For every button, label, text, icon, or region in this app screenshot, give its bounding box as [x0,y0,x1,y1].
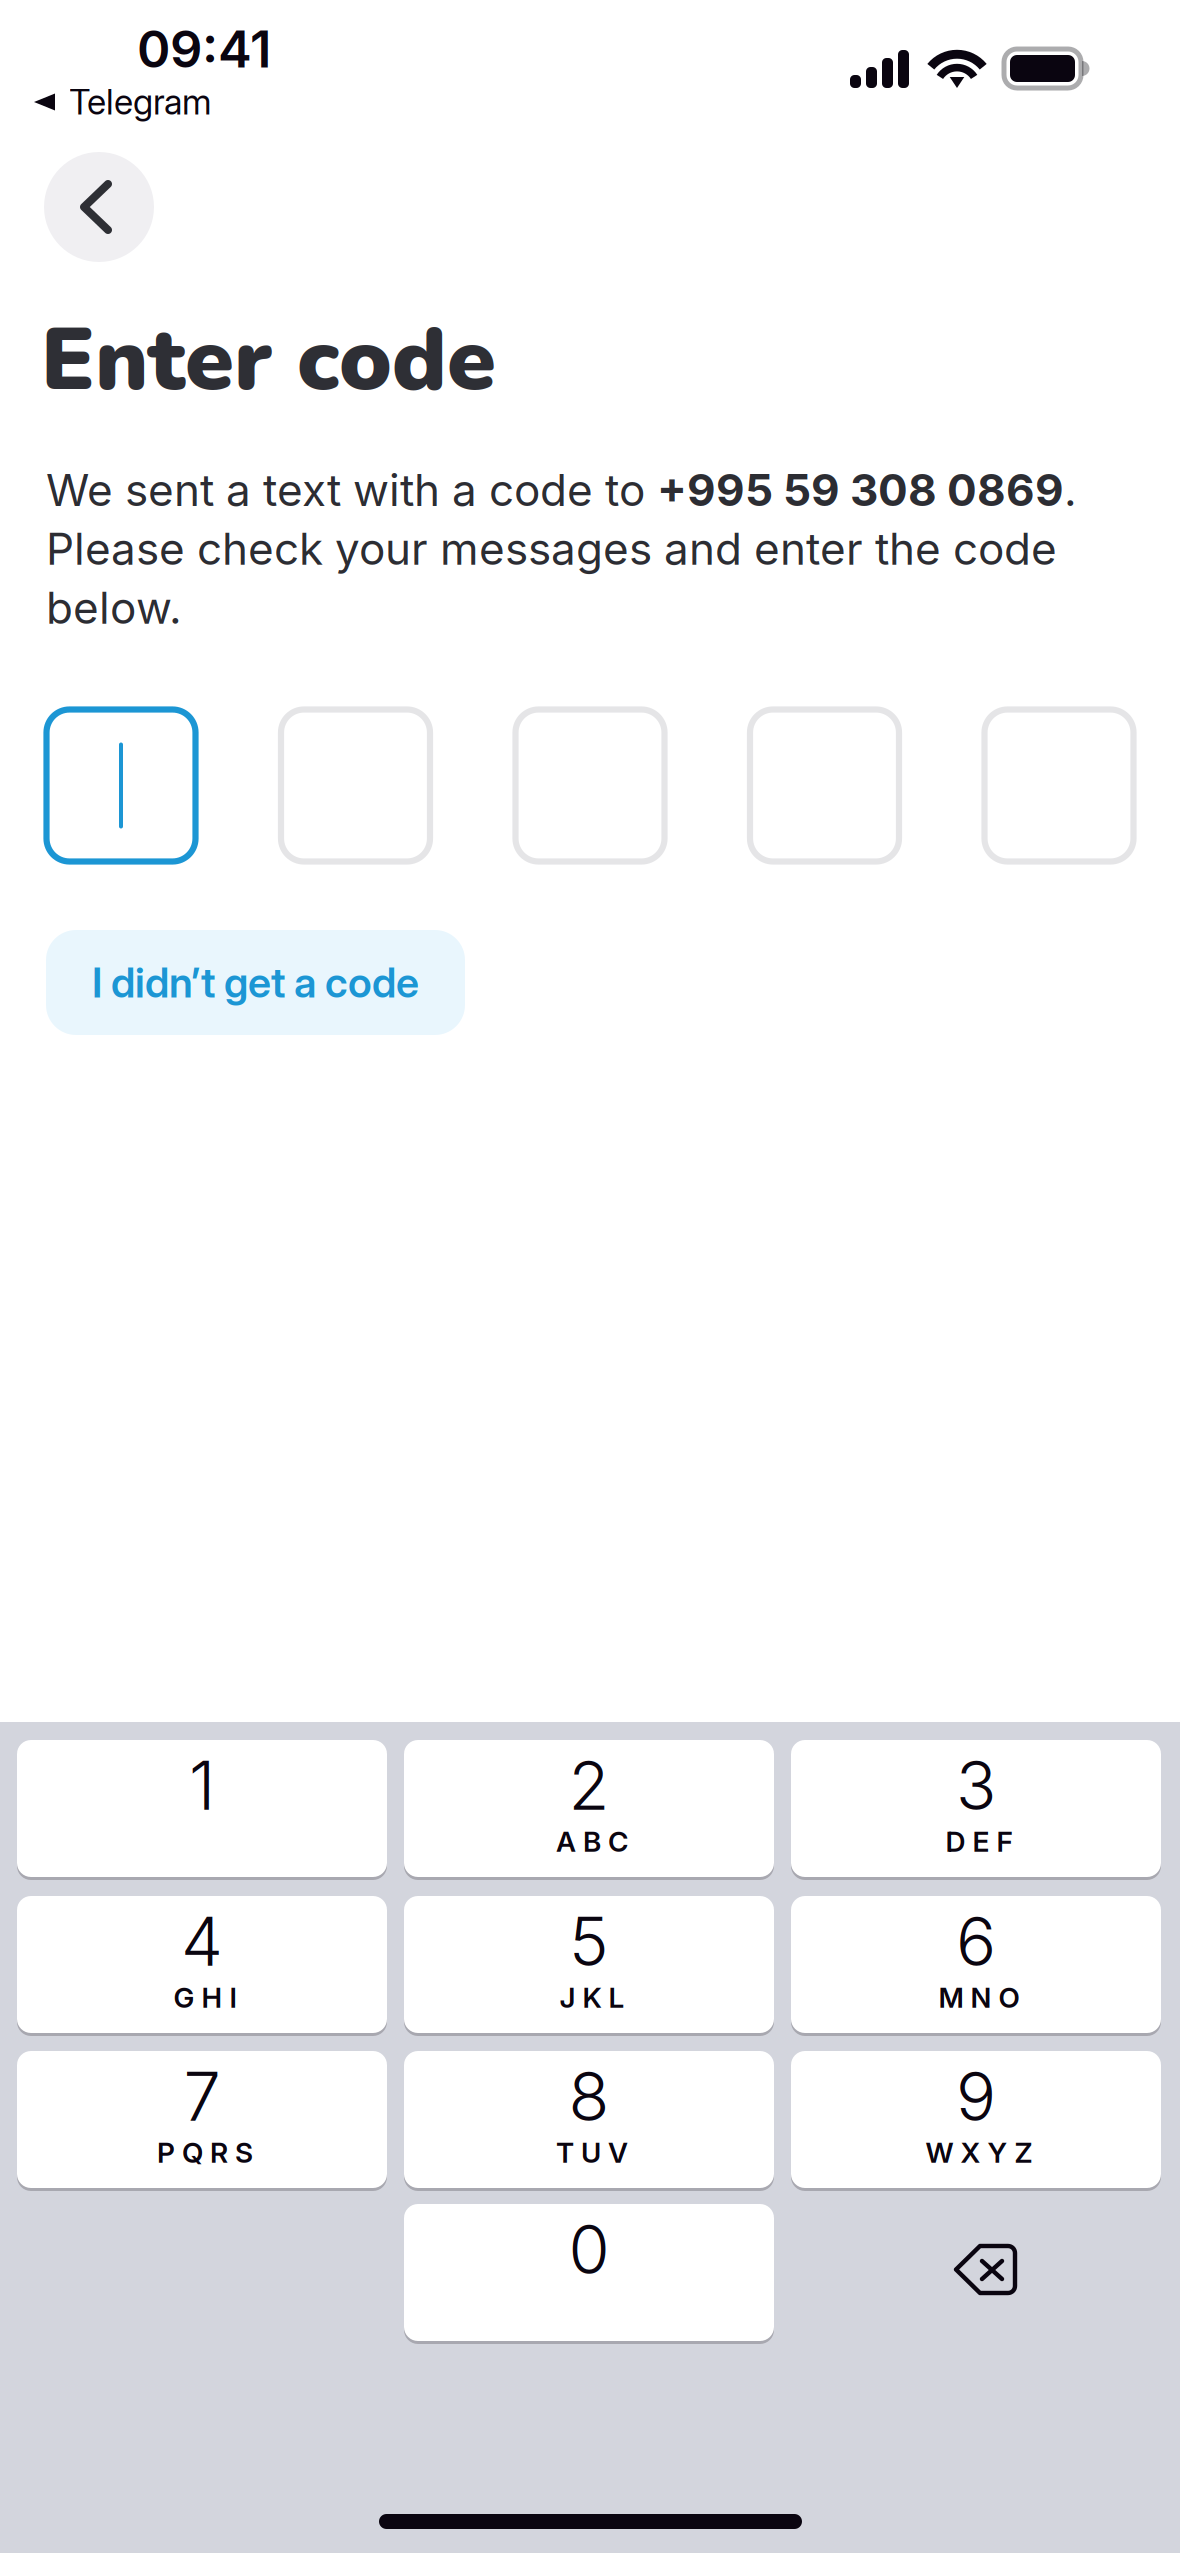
staticText: M N O [938,1981,1019,2014]
button[interactable]: 9 [791,2049,1161,2190]
button[interactable]: 1 [17,1738,387,1879]
staticText: I didn’t get a code [92,957,419,1007]
staticText: A B C [556,1825,628,1858]
button[interactable]: 8 [404,2049,774,2190]
button[interactable]: 3 [791,1738,1161,1879]
staticText: W X Y Z [925,2136,1032,2169]
button[interactable]: Delete [791,2202,1161,2343]
staticText: 9 [956,2056,996,2137]
button[interactable]: Verification code [46,709,1133,861]
staticText: J K L [559,1981,624,2014]
button[interactable]: Back [44,152,154,262]
staticText: 09:41 [137,18,271,80]
staticText: 3 [956,1745,996,1826]
staticText: Telegram [69,81,212,123]
staticText: 8 [568,2056,609,2137]
staticText: Enter code [41,300,496,420]
button[interactable]: 7 [17,2049,387,2190]
button[interactable]: 5 [404,1894,774,2035]
staticText: T U V [556,2136,628,2169]
button[interactable]: I didn’t get a code [46,930,465,1035]
staticText: 6 [956,1901,996,1982]
staticText: 7 [183,2056,220,2137]
button[interactable]: 6 [791,1894,1161,2035]
staticText: 4 [181,1901,223,1982]
staticText: 5 [569,1901,609,1982]
staticText: We sent a text with a code to +995 59 30… [46,464,1077,634]
button[interactable]: 2 [404,1738,774,1879]
staticText: D E F [945,1825,1012,1858]
staticText: P Q R S [157,2136,253,2169]
button[interactable]: Telegram [34,80,244,124]
staticText: 2 [568,1745,609,1826]
staticText: G H I [173,1981,236,2014]
staticText: 0 [568,2209,609,2290]
button[interactable]: 4 [17,1894,387,2035]
staticText: 1 [189,1745,215,1826]
button[interactable]: 0 [404,2202,774,2343]
